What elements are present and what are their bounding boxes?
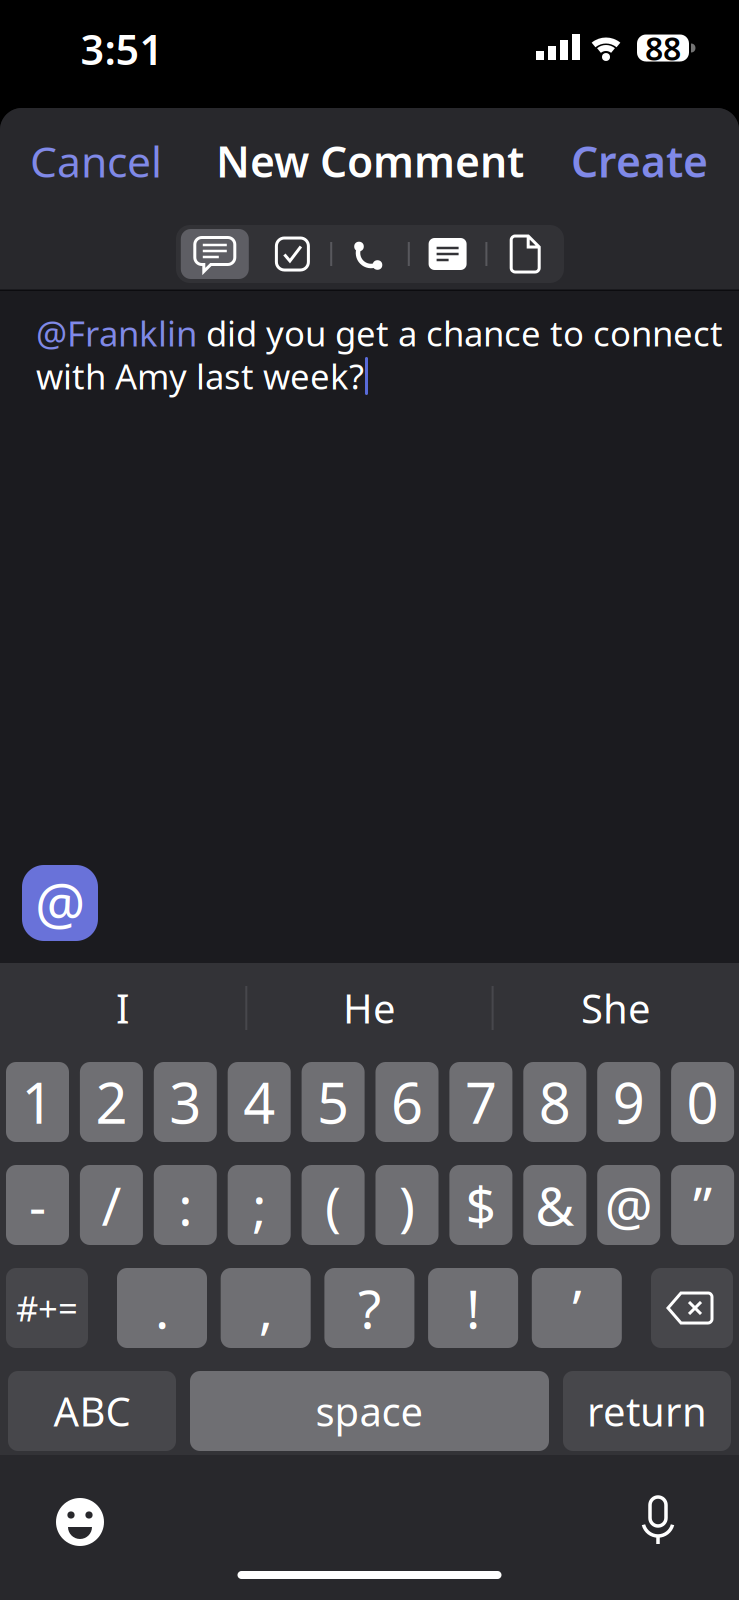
staticText: Cancel — [30, 133, 162, 189]
button[interactable]: 9 — [597, 1062, 660, 1142]
button[interactable]: , — [221, 1268, 311, 1348]
staticText: She — [581, 981, 651, 1034]
button[interactable]: ; — [228, 1165, 291, 1245]
staticText: ’ — [572, 1273, 581, 1343]
staticText: 9 — [613, 1065, 645, 1139]
staticText: $ — [465, 1170, 496, 1240]
staticText: ? — [358, 1273, 381, 1343]
staticText: @ — [35, 866, 85, 940]
staticText: & — [535, 1170, 574, 1240]
button[interactable]: 5 — [302, 1062, 365, 1142]
staticText: New Comment — [216, 133, 524, 189]
button[interactable]: return — [563, 1371, 731, 1451]
button[interactable]: Task — [254, 225, 331, 283]
staticText: 8 — [539, 1065, 571, 1139]
staticText: ABC — [53, 1384, 130, 1437]
button[interactable]: space — [190, 1371, 549, 1451]
staticText: space — [315, 1384, 423, 1437]
staticText: . — [155, 1273, 169, 1343]
button[interactable]: @ — [597, 1165, 660, 1245]
button[interactable]: 3 — [154, 1062, 217, 1142]
button[interactable]: $ — [449, 1165, 512, 1245]
staticText: 7 — [465, 1065, 497, 1139]
staticText: He — [343, 981, 396, 1034]
button[interactable]: 4 — [228, 1062, 291, 1142]
button[interactable]: - — [6, 1165, 69, 1245]
button[interactable]: ABC — [8, 1371, 176, 1451]
button[interactable]: Mention — [22, 865, 98, 941]
button[interactable]: ) — [375, 1165, 438, 1245]
button[interactable]: ? — [324, 1268, 414, 1348]
staticText: 5 — [317, 1065, 349, 1139]
button[interactable]: 2 — [80, 1062, 143, 1142]
staticText: Create — [571, 133, 708, 189]
button[interactable]: ( — [302, 1165, 365, 1245]
staticText: @Franklin — [36, 310, 197, 356]
button[interactable]: Note — [409, 225, 486, 283]
staticText: @ — [605, 1170, 653, 1240]
button[interactable]: #+= — [6, 1268, 88, 1348]
staticText: 3:51 — [80, 22, 163, 76]
staticText: : — [178, 1170, 192, 1240]
staticText: ! — [466, 1273, 480, 1343]
staticText: ” — [693, 1170, 712, 1240]
button[interactable]: ” — [671, 1165, 734, 1245]
staticText: 0 — [687, 1065, 719, 1139]
staticText: I — [116, 981, 130, 1034]
button[interactable]: Comment — [176, 225, 254, 283]
staticText: - — [29, 1170, 46, 1240]
staticText: ) — [399, 1170, 415, 1240]
button[interactable]: ! — [428, 1268, 518, 1348]
button[interactable]: ’ — [532, 1268, 622, 1348]
staticText: ( — [325, 1170, 341, 1240]
staticText: 1 — [21, 1065, 53, 1139]
button[interactable]: 7 — [449, 1062, 512, 1142]
staticText: 88 — [645, 27, 681, 69]
button[interactable]: Delete — [651, 1268, 733, 1348]
staticText: / — [101, 1170, 121, 1240]
staticText: , — [259, 1273, 273, 1343]
button[interactable]: Cancel — [30, 133, 250, 189]
staticText: did you get a chance to connect — [197, 310, 723, 356]
staticText: with Amy last week? — [36, 353, 364, 399]
staticText: return — [587, 1384, 707, 1437]
staticText: ; — [252, 1170, 266, 1240]
staticText: 3 — [169, 1065, 201, 1139]
button[interactable]: I — [3, 973, 243, 1043]
button[interactable]: 8 — [523, 1062, 586, 1142]
button[interactable]: 0 — [671, 1062, 734, 1142]
staticText: 2 — [95, 1065, 127, 1139]
staticText: #+= — [16, 1285, 78, 1331]
button[interactable]: Emoji — [50, 1492, 110, 1552]
button[interactable]: 6 — [375, 1062, 438, 1142]
button[interactable]: 1 — [6, 1062, 69, 1142]
button[interactable]: Create — [488, 133, 708, 189]
button[interactable]: : — [154, 1165, 217, 1245]
button[interactable]: File — [486, 225, 564, 283]
button[interactable]: & — [523, 1165, 586, 1245]
button[interactable]: / — [80, 1165, 143, 1245]
staticText: 6 — [391, 1065, 423, 1139]
button[interactable]: He — [249, 973, 489, 1043]
button[interactable]: She — [496, 973, 736, 1043]
button[interactable]: Dictation — [628, 1490, 688, 1550]
staticText: 4 — [243, 1065, 275, 1139]
button[interactable]: Call — [331, 225, 409, 283]
button[interactable]: . — [117, 1268, 207, 1348]
